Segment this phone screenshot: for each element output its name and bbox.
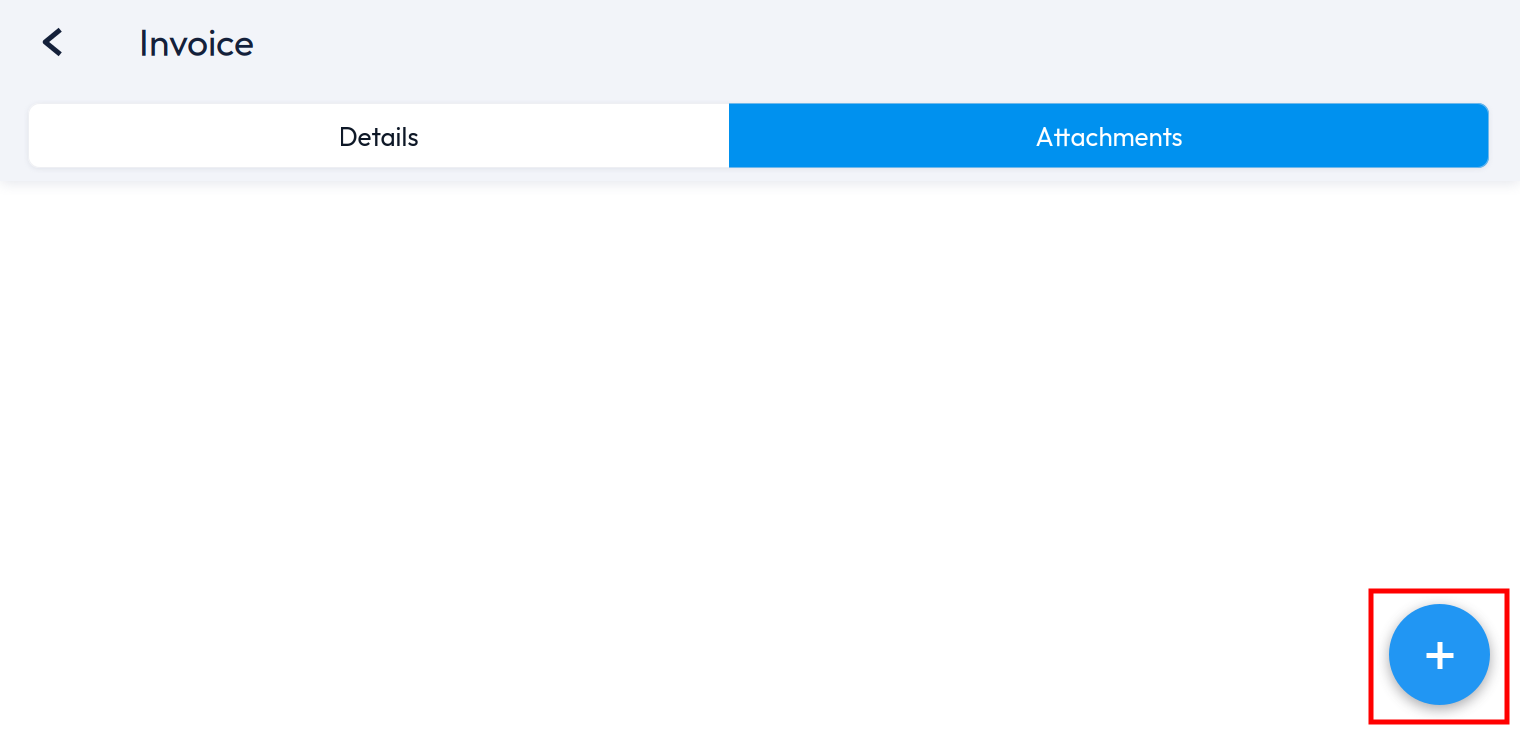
button[interactable]: Details: [28, 103, 729, 168]
button[interactable]: Add attachment: [1371, 591, 1507, 722]
staticText: Attachments: [1035, 120, 1182, 153]
staticText: Details: [338, 120, 418, 153]
button[interactable]: Back: [17, 0, 89, 84]
button[interactable]: Attachments: [729, 103, 1489, 168]
staticText: Invoice: [139, 18, 254, 65]
